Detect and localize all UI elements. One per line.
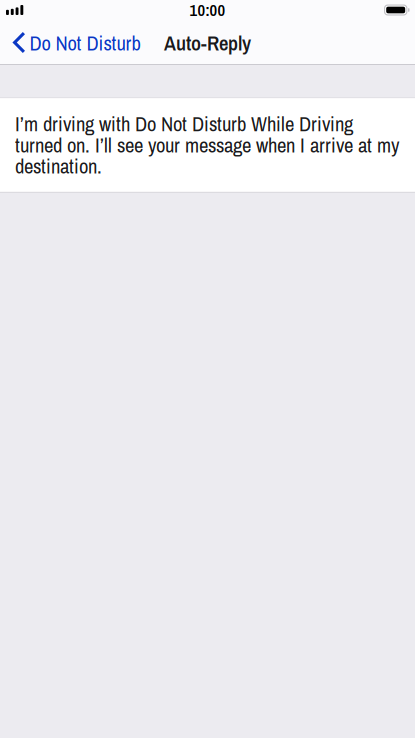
staticText: I’m driving with Do Not Disturb While Dr… [15,113,399,177]
button[interactable]: I’m driving with Do Not Disturb While Dr… [0,98,415,192]
button[interactable]: Back to Do Not Disturb [0,24,148,66]
staticText: Do Not Disturb [29,29,140,57]
staticText: Auto-Reply [164,29,251,57]
staticText: 10:00 [189,0,225,21]
